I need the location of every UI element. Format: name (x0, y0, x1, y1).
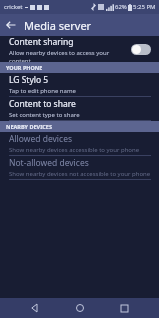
staticText: cricket (4, 3, 23, 11)
staticText: Not-allowed devices (9, 157, 89, 169)
staticText: Show nearby devices accessible to your p… (9, 146, 140, 154)
staticText: 5:25 PM (133, 3, 156, 11)
staticText: 62% (115, 3, 127, 11)
button[interactable]: Not-allowed devices (0, 156, 159, 179)
staticText: Content to share (9, 98, 76, 110)
button[interactable]: LG Stylo 5 (0, 73, 159, 96)
button[interactable]: Content sharing toggle (131, 44, 151, 55)
staticText: NEARBY DEVICES (6, 123, 52, 130)
staticText: Tap to edit phone name (9, 87, 76, 95)
staticText: Show nearby devices not accessible to yo… (9, 170, 151, 178)
button[interactable]: Allowed devices (0, 132, 159, 155)
button[interactable]: Home (70, 298, 90, 318)
staticText: Content sharing (9, 36, 74, 48)
button[interactable]: Back (25, 298, 45, 318)
button[interactable]: Back (0, 14, 22, 36)
button[interactable]: Content sharing (0, 36, 159, 62)
staticText: Set content type to share (9, 111, 80, 119)
staticText: Allow nearby devices to access your cont… (9, 49, 127, 62)
staticText: YOUR PHONE (6, 64, 43, 71)
staticText: LG Stylo 5 (9, 74, 49, 86)
staticText: Allowed devices (9, 133, 73, 145)
staticText: Media server (24, 18, 92, 33)
button[interactable]: Recent apps (114, 298, 134, 318)
button[interactable]: Content to share (0, 97, 159, 120)
